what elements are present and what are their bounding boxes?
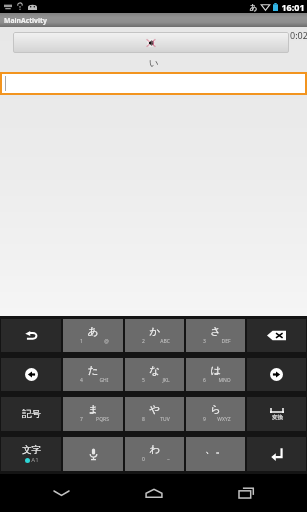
button[interactable]: Convert [247, 397, 306, 431]
button[interactable]: Voice input [63, 437, 123, 471]
staticText: 文字 [22, 444, 41, 456]
staticText: MNO [218, 377, 231, 384]
button[interactable]: 、。 [186, 437, 245, 471]
button[interactable]: た [63, 358, 123, 391]
staticText: TUV [160, 416, 170, 423]
button[interactable]: Symbols [1, 397, 61, 431]
staticText: WXYZ [217, 416, 231, 423]
staticText: @ [104, 338, 109, 345]
staticText: さ [186, 325, 245, 338]
staticText: 6 [203, 377, 206, 384]
button[interactable]: Backspace [247, 319, 306, 352]
staticText: JKL [162, 377, 170, 384]
button[interactable]: Cursor left [1, 358, 61, 391]
staticText: PQRS [96, 416, 109, 423]
button[interactable]: ら [186, 397, 245, 431]
staticText: 9 [203, 416, 206, 423]
staticText: た [63, 364, 123, 377]
button[interactable]: わ [125, 437, 184, 471]
staticText: 記号 [22, 408, 41, 420]
staticText: 3 [203, 338, 206, 345]
staticText: い [0, 57, 307, 69]
staticText: な [125, 364, 184, 377]
button[interactable]: Home [123, 474, 185, 512]
staticText: 0 [142, 456, 145, 463]
staticText: 16:01 [281, 1, 305, 13]
staticText: 変換 [272, 414, 283, 421]
staticText: は [186, 364, 245, 377]
button[interactable]: Enter [247, 437, 306, 471]
button[interactable]: Recent apps [215, 474, 277, 512]
staticText: 7 [80, 416, 83, 423]
staticText: ~ [167, 456, 170, 463]
button[interactable]: Cursor right [247, 358, 306, 391]
button[interactable]: や [125, 397, 184, 431]
staticText: 1 [80, 338, 83, 345]
staticText: 4 [80, 377, 83, 384]
staticText: わ [125, 443, 184, 456]
staticText: ABC [160, 338, 170, 345]
staticText: DEF [221, 338, 231, 345]
button[interactable]: Text input [0, 72, 307, 95]
button[interactable]: さ [186, 319, 245, 352]
staticText: や [125, 403, 184, 416]
button[interactable]: Mute [13, 32, 289, 53]
button[interactable]: ま [63, 397, 123, 431]
staticText: 8 [142, 416, 145, 423]
button[interactable]: な [125, 358, 184, 391]
staticText: ま [63, 403, 123, 416]
staticText: 2 [142, 338, 145, 345]
staticText: MainActivity [4, 16, 47, 25]
staticText: A1 [31, 456, 39, 464]
staticText: 、。 [186, 443, 245, 456]
button[interactable]: Input mode [1, 437, 61, 471]
staticText: か [125, 325, 184, 338]
staticText: 5 [142, 377, 145, 384]
button[interactable]: は [186, 358, 245, 391]
button[interactable]: か [125, 319, 184, 352]
button[interactable]: Undo [1, 319, 61, 352]
staticText: GHI [99, 377, 109, 384]
button[interactable]: Hide keyboard [30, 474, 92, 512]
staticText: ら [186, 403, 245, 416]
staticText: 0:02 [290, 29, 307, 41]
button[interactable]: あ [63, 319, 123, 352]
staticText: あ [63, 325, 123, 338]
staticText: あ [249, 2, 258, 12]
